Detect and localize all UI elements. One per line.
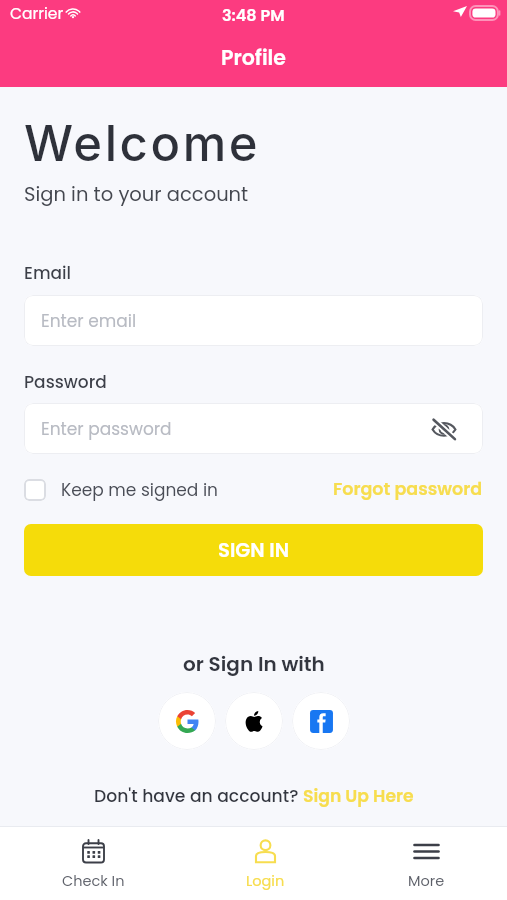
staticText: Don't have an account? bbox=[94, 784, 303, 808]
staticText: Password bbox=[24, 370, 107, 394]
button[interactable]: SIGN IN bbox=[24, 524, 483, 576]
staticText: Carrier bbox=[10, 3, 64, 25]
staticText: Sign in to your account bbox=[24, 181, 249, 208]
staticText: SIGN IN bbox=[218, 537, 289, 564]
button[interactable]: Sign in with Google bbox=[158, 692, 216, 750]
staticText: More bbox=[408, 871, 445, 891]
button[interactable]: Sign in with Apple bbox=[225, 692, 283, 750]
staticText: Welcome bbox=[24, 114, 261, 173]
button[interactable]: Enter email bbox=[24, 295, 483, 346]
button[interactable]: Enter password bbox=[24, 403, 483, 454]
button[interactable]: Check In bbox=[13, 827, 173, 900]
staticText: Forgot password bbox=[333, 477, 483, 502]
staticText: Email bbox=[24, 261, 72, 285]
staticText: Login bbox=[246, 871, 285, 891]
button[interactable]: Forgot password bbox=[333, 477, 483, 502]
staticText: or Sign In with bbox=[183, 650, 325, 678]
staticText: Enter email bbox=[41, 309, 137, 333]
button[interactable]: Sign in with Facebook bbox=[292, 692, 350, 750]
staticText: Enter password bbox=[41, 417, 172, 441]
staticText: 3:48 PM bbox=[222, 4, 285, 26]
staticText: Sign Up Here bbox=[303, 784, 414, 808]
button[interactable]: More bbox=[346, 827, 507, 900]
button[interactable]: Show password bbox=[431, 418, 457, 440]
button[interactable]: Sign Up Here bbox=[303, 784, 414, 808]
staticText: Check In bbox=[62, 871, 125, 891]
staticText: Profile bbox=[221, 43, 286, 72]
button[interactable]: Login bbox=[185, 827, 346, 900]
staticText: Keep me signed in bbox=[61, 478, 218, 502]
button[interactable]: Keep me signed in bbox=[24, 478, 218, 502]
